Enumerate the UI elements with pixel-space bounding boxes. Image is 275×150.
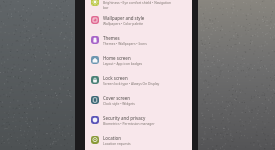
button[interactable]: Home screen bbox=[85, 50, 192, 70]
button[interactable]: Wallpaper and style bbox=[85, 10, 192, 30]
staticText: Biometrics • Permission manager bbox=[103, 121, 155, 125]
staticText: Layout • App icon badges bbox=[103, 61, 143, 65]
staticText: Home screen bbox=[103, 55, 131, 61]
staticText: Wallpaper and style bbox=[103, 15, 145, 21]
staticText: Wallpapers • Color palette bbox=[103, 21, 144, 25]
staticText: Lock screen bbox=[103, 75, 128, 81]
staticText: Clock style • Widgets bbox=[103, 101, 135, 105]
staticText: Cover screen bbox=[103, 95, 131, 101]
staticText: Screen lock type • Always On Display bbox=[103, 81, 160, 85]
staticText: Themes • Wallpapers • Icons bbox=[103, 41, 147, 45]
staticText: Location requests bbox=[103, 141, 131, 145]
staticText: Security and privacy bbox=[103, 115, 146, 121]
staticText: Brightness • Eye comfort shield • Naviga… bbox=[103, 0, 172, 10]
button[interactable]: Display bbox=[85, 0, 192, 12]
button[interactable]: Lock screen bbox=[85, 70, 192, 90]
button[interactable]: Cover screen bbox=[85, 90, 192, 110]
staticText: Location bbox=[103, 135, 121, 141]
staticText: Themes bbox=[103, 35, 120, 41]
button[interactable]: Security and privacy bbox=[85, 110, 192, 130]
button[interactable]: Themes bbox=[85, 30, 192, 50]
button[interactable]: Location bbox=[85, 130, 192, 150]
